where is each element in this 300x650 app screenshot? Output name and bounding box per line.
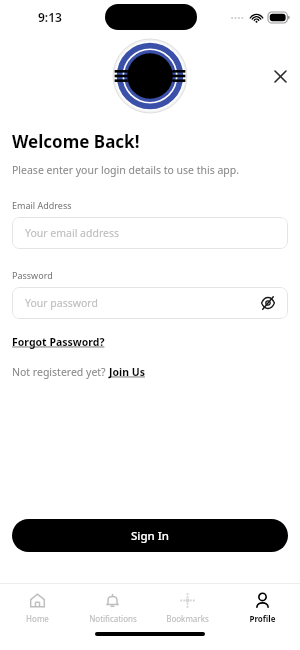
- button[interactable]: Join Us: [109, 365, 145, 379]
- button[interactable]: Notifications: [75, 584, 150, 632]
- button[interactable]: Close: [266, 62, 294, 90]
- staticText: Join Us: [109, 365, 145, 379]
- button[interactable]: Home: [0, 584, 75, 632]
- staticText: Password: [12, 269, 53, 281]
- button[interactable]: Sign In: [12, 519, 288, 552]
- button[interactable]: Profile: [225, 584, 300, 632]
- staticText: Sign In: [131, 528, 170, 544]
- button[interactable]: Forgot Password?: [12, 335, 105, 349]
- staticText: Not registered yet?: [12, 365, 109, 379]
- button[interactable]: Your email address: [12, 217, 288, 249]
- staticText: Welcome Back!: [12, 130, 140, 153]
- staticText: Please enter your login details to use t…: [12, 163, 240, 177]
- button[interactable]: Your password: [12, 287, 288, 319]
- staticText: Notifications: [89, 613, 137, 624]
- staticText: Forgot Password?: [12, 335, 105, 349]
- button[interactable]: Bookmarks: [150, 584, 225, 632]
- staticText: Home: [26, 613, 49, 624]
- staticText: Profile: [249, 613, 276, 624]
- staticText: Email Address: [12, 199, 72, 211]
- button[interactable]: Show password: [257, 292, 279, 314]
- staticText: Your password: [25, 296, 98, 310]
- staticText: Your email address: [25, 226, 120, 240]
- staticText: 9:13: [38, 9, 62, 25]
- staticText: Bookmarks: [166, 613, 209, 624]
